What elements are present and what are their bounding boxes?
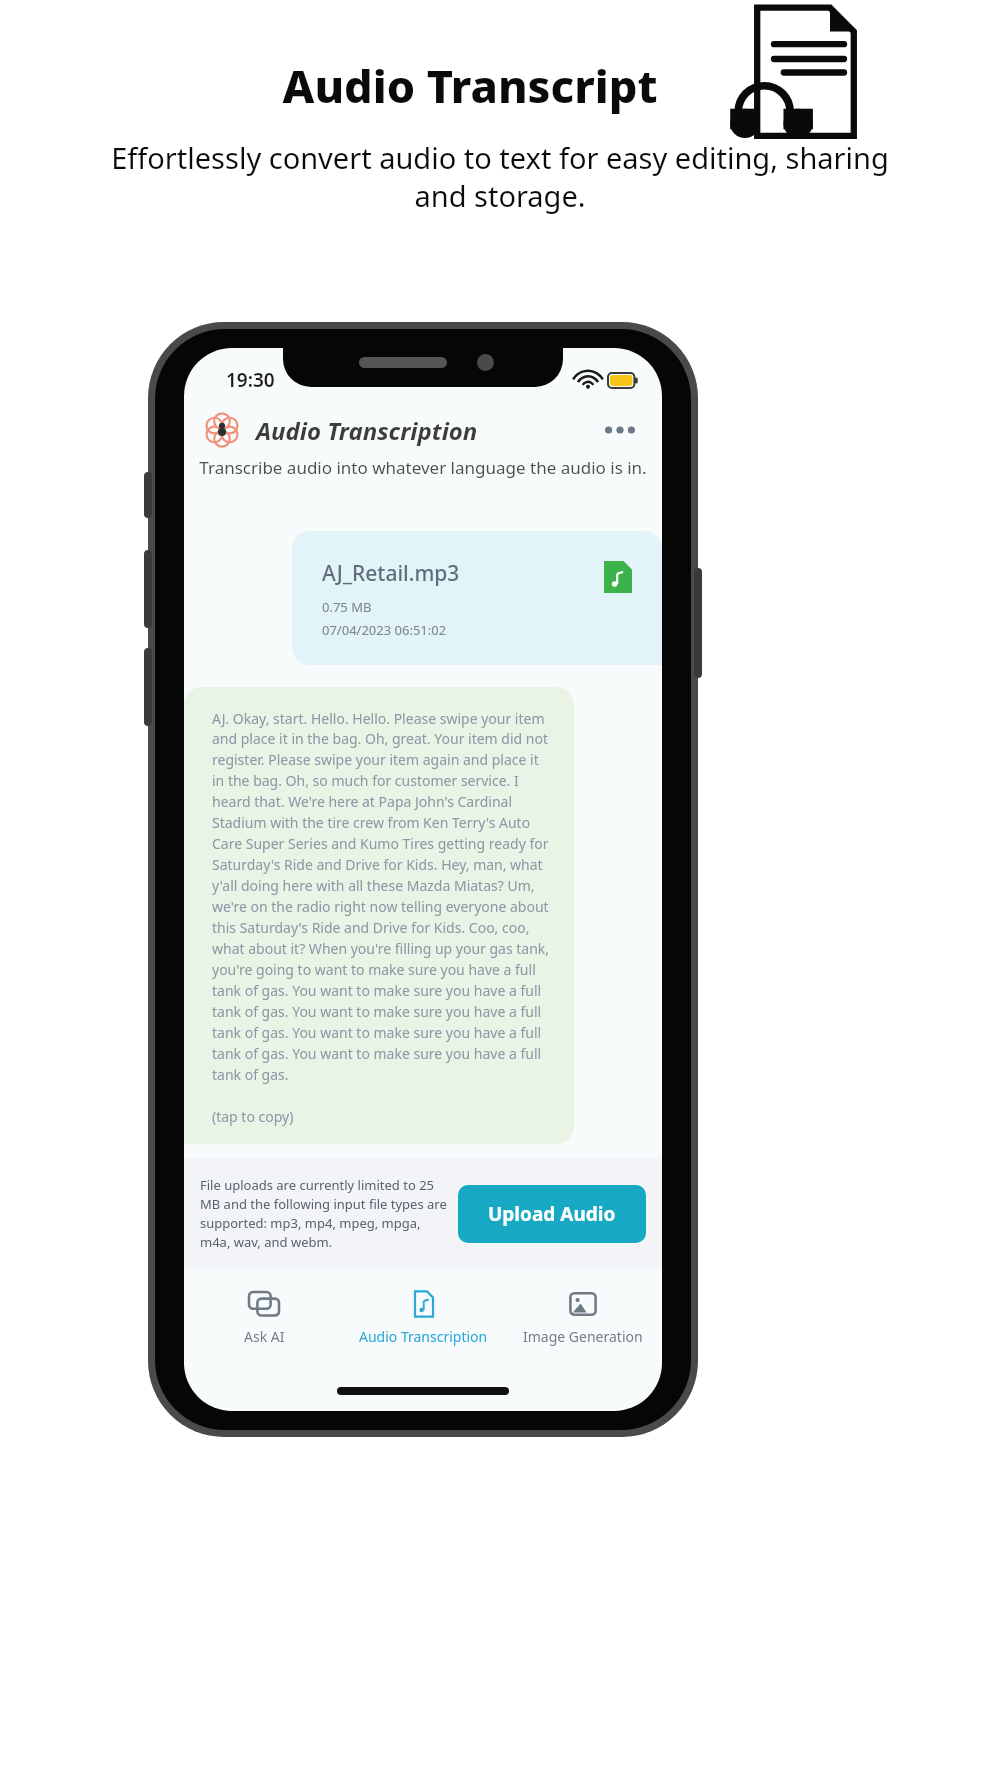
staticText: Audio Transcript <box>10 55 930 116</box>
staticText: Effortlessly convert audio to text for e… <box>110 138 890 215</box>
staticText: File uploads are currently limited to 25… <box>200 1176 452 1251</box>
button[interactable]: More options <box>600 410 640 450</box>
staticText: Upload Audio <box>488 1201 616 1227</box>
staticText: AJ. Okay, start. Hello. Hello. Please sw… <box>212 709 552 1085</box>
staticText: Audio Transcription <box>359 1327 488 1346</box>
button[interactable]: Upload Audio <box>458 1185 646 1243</box>
button[interactable]: AJ. Okay, start. Hello. Hello. Please sw… <box>184 687 574 1144</box>
button[interactable]: Ask AI <box>184 1269 344 1365</box>
staticText: Transcribe audio into whatever language … <box>198 456 648 479</box>
staticText: 19:30 <box>226 367 275 393</box>
staticText: AJ_Retail.mp3 <box>322 559 460 588</box>
staticText: (tap to copy) <box>212 1107 294 1126</box>
staticText: Ask AI <box>244 1327 285 1346</box>
button[interactable]: Audio Transcription <box>344 1269 503 1365</box>
staticText: 0.75 MB <box>322 598 372 616</box>
staticText: Audio Transcription <box>256 414 478 447</box>
button[interactable]: Image Generation <box>503 1269 662 1365</box>
button[interactable]: AI Hive logo <box>202 410 242 450</box>
staticText: Image Generation <box>523 1327 643 1346</box>
staticText: 07/04/2023 06:51:02 <box>322 621 447 639</box>
button[interactable]: AJ_Retail.mp3 <box>292 531 662 665</box>
